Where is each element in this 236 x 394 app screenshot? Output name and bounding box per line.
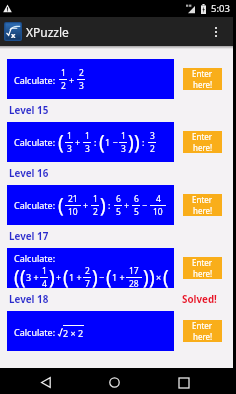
staticText: Calculate:: [14, 326, 58, 338]
staticText: 21: [68, 193, 78, 205]
staticText: Calculate:: [14, 199, 58, 211]
staticText: (: [20, 264, 26, 288]
staticText: 3 +: [26, 271, 39, 283]
staticText: 7: [85, 278, 90, 288]
staticText: 1: [61, 67, 66, 79]
staticText: 3: [121, 143, 126, 155]
button[interactable]: Recent apps: [167, 371, 200, 394]
staticText: 3: [79, 80, 84, 92]
staticText: ): [134, 129, 140, 155]
staticText: +: [83, 199, 89, 211]
staticText: Calculate:: [14, 74, 58, 86]
staticText: 1 +: [112, 271, 125, 283]
staticText: +: [56, 271, 62, 283]
button[interactable]: Enter: [183, 131, 222, 153]
staticText: 1: [93, 193, 98, 205]
staticText: Solved!: [182, 293, 217, 306]
staticText: 1 −: [105, 136, 118, 148]
staticText: Level 15: [9, 104, 49, 117]
button[interactable]: Enter: [183, 68, 222, 90]
staticText: (: [163, 264, 169, 288]
staticText: (: [63, 264, 69, 288]
button[interactable]: Calculate:: [7, 122, 174, 162]
staticText: 28: [129, 278, 139, 288]
button[interactable]: More options: [204, 17, 228, 46]
staticText: 2: [85, 265, 90, 277]
staticText: (: [106, 264, 112, 288]
staticText: Enter: [192, 320, 213, 331]
staticText: ): [149, 264, 155, 288]
staticText: 6: [116, 193, 121, 205]
staticText: (: [58, 129, 64, 155]
staticText: 1: [42, 265, 47, 277]
staticText: 4: [42, 278, 47, 288]
button[interactable]: Calculate:: [7, 185, 174, 225]
staticText: +: [75, 136, 81, 148]
staticText: 1: [121, 130, 126, 142]
staticText: Enter: [192, 131, 213, 142]
staticText: (: [58, 192, 64, 218]
staticText: Enter: [192, 194, 213, 205]
staticText: ): [143, 264, 149, 288]
staticText: 1: [85, 130, 90, 142]
staticText: −: [99, 271, 105, 283]
staticText: 6: [134, 193, 139, 205]
staticText: 4: [156, 193, 161, 205]
button[interactable]: Home: [98, 371, 131, 394]
staticText: 3: [150, 130, 155, 142]
staticText: ): [128, 129, 134, 155]
staticText: 2 × 2: [63, 327, 84, 339]
staticText: 2: [61, 80, 66, 92]
staticText: Calculate:: [14, 136, 58, 148]
staticText: here!: [193, 142, 213, 153]
staticText: :: [108, 199, 111, 211]
staticText: ): [92, 264, 98, 288]
button[interactable]: Calculate:: [7, 59, 174, 99]
staticText: x: [11, 30, 16, 40]
staticText: 1: [67, 130, 72, 142]
staticText: 5: [116, 206, 121, 218]
staticText: 10: [68, 206, 78, 218]
staticText: Calculate:: [14, 252, 56, 264]
staticText: :: [142, 136, 145, 148]
staticText: 3: [67, 143, 72, 155]
staticText: 2: [79, 67, 84, 79]
button[interactable]: Enter: [183, 194, 222, 216]
staticText: 2: [150, 143, 155, 155]
staticText: Level 16: [9, 167, 49, 180]
staticText: ): [100, 192, 106, 218]
staticText: XPuzzle: [26, 24, 69, 40]
button[interactable]: Enter: [183, 320, 222, 342]
staticText: Enter: [192, 257, 213, 268]
staticText: 2: [93, 206, 98, 218]
staticText: 17: [129, 265, 139, 277]
staticText: 5: [134, 206, 139, 218]
staticText: +: [124, 199, 130, 211]
staticText: Level 18: [9, 293, 49, 306]
staticText: :: [94, 136, 97, 148]
button[interactable]: Calculate:: [7, 248, 174, 288]
staticText: (: [14, 264, 20, 288]
staticText: ): [49, 264, 55, 288]
button[interactable]: Calculate:: [7, 311, 174, 351]
staticText: here!: [193, 79, 213, 90]
staticText: (: [99, 129, 105, 155]
staticText: −: [142, 199, 148, 211]
staticText: here!: [193, 331, 213, 342]
staticText: Enter: [192, 68, 213, 79]
staticText: 1 +: [69, 271, 82, 283]
staticText: +: [69, 74, 75, 86]
staticText: 5:03: [211, 2, 230, 15]
staticText: Level 17: [9, 230, 49, 243]
staticText: ×: [156, 271, 162, 283]
staticText: 3: [85, 143, 90, 155]
button[interactable]: Enter: [183, 257, 222, 279]
staticText: here!: [193, 268, 213, 279]
staticText: here!: [193, 205, 213, 216]
staticText: 10: [153, 206, 163, 218]
button[interactable]: Back: [29, 371, 62, 394]
